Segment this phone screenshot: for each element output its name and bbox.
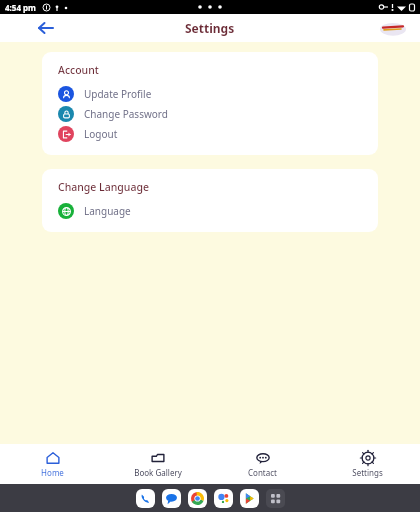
- button[interactable]: Update Profile: [58, 84, 366, 104]
- staticText: Account: [58, 63, 99, 77]
- button[interactable]: Logo: [380, 20, 406, 36]
- button[interactable]: All apps: [266, 489, 285, 508]
- button[interactable]: Phone: [136, 489, 155, 508]
- staticText: Logout: [84, 127, 118, 141]
- button[interactable]: Contact: [210, 444, 315, 484]
- button[interactable]: Assistant: [214, 489, 233, 508]
- button[interactable]: Settings: [315, 444, 420, 484]
- button[interactable]: Messages: [162, 489, 181, 508]
- staticText: Language: [84, 204, 131, 218]
- staticText: 4:54 pm: [5, 2, 36, 13]
- button[interactable]: Chrome: [188, 489, 207, 508]
- staticText: Contact: [248, 467, 277, 478]
- staticText: Change Language: [58, 180, 149, 194]
- staticText: Change Password: [84, 107, 168, 121]
- button[interactable]: Language: [58, 201, 366, 221]
- staticText: Settings: [352, 467, 383, 478]
- staticText: Home: [41, 467, 64, 478]
- button[interactable]: Home: [0, 444, 105, 484]
- button[interactable]: Back: [32, 15, 58, 41]
- button[interactable]: Play Store: [240, 489, 259, 508]
- staticText: Update Profile: [84, 87, 152, 101]
- button[interactable]: Book Gallery: [105, 444, 210, 484]
- button[interactable]: Change Password: [58, 104, 366, 124]
- staticText: Settings: [185, 20, 235, 36]
- button[interactable]: Logout: [58, 124, 366, 144]
- staticText: Book Gallery: [134, 467, 182, 478]
